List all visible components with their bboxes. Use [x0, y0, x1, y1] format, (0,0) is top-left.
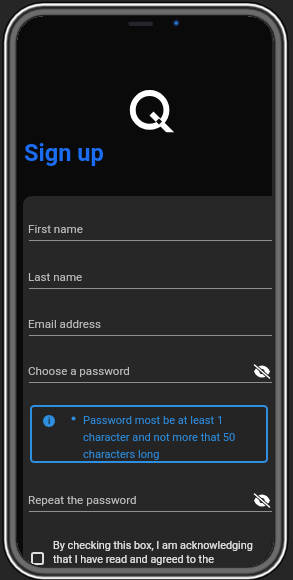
- button[interactable]: i: [30, 405, 268, 463]
- staticText: By checking this box, I am acknowledging…: [53, 539, 256, 566]
- button[interactable]: First name: [29, 214, 272, 241]
- button[interactable]: By checking this box, I am acknowledging…: [31, 539, 261, 568]
- staticText: Repeat the password: [28, 493, 137, 507]
- button[interactable]: Email address: [29, 309, 272, 336]
- staticText: Last name: [28, 270, 83, 284]
- staticText: i: [48, 416, 51, 427]
- other: Show password: [254, 494, 270, 507]
- staticText: Choose a password: [28, 364, 130, 378]
- staticText: First name: [28, 222, 83, 236]
- button[interactable]: Repeat the password: [29, 485, 272, 512]
- button[interactable]: Choose a password: [29, 356, 272, 383]
- staticText: Password most be at least 1 character an…: [83, 414, 241, 461]
- other: Show password: [254, 365, 270, 378]
- staticText: Email address: [28, 317, 101, 331]
- button[interactable]: Last name: [29, 262, 272, 289]
- staticText: Sign up: [24, 139, 104, 167]
